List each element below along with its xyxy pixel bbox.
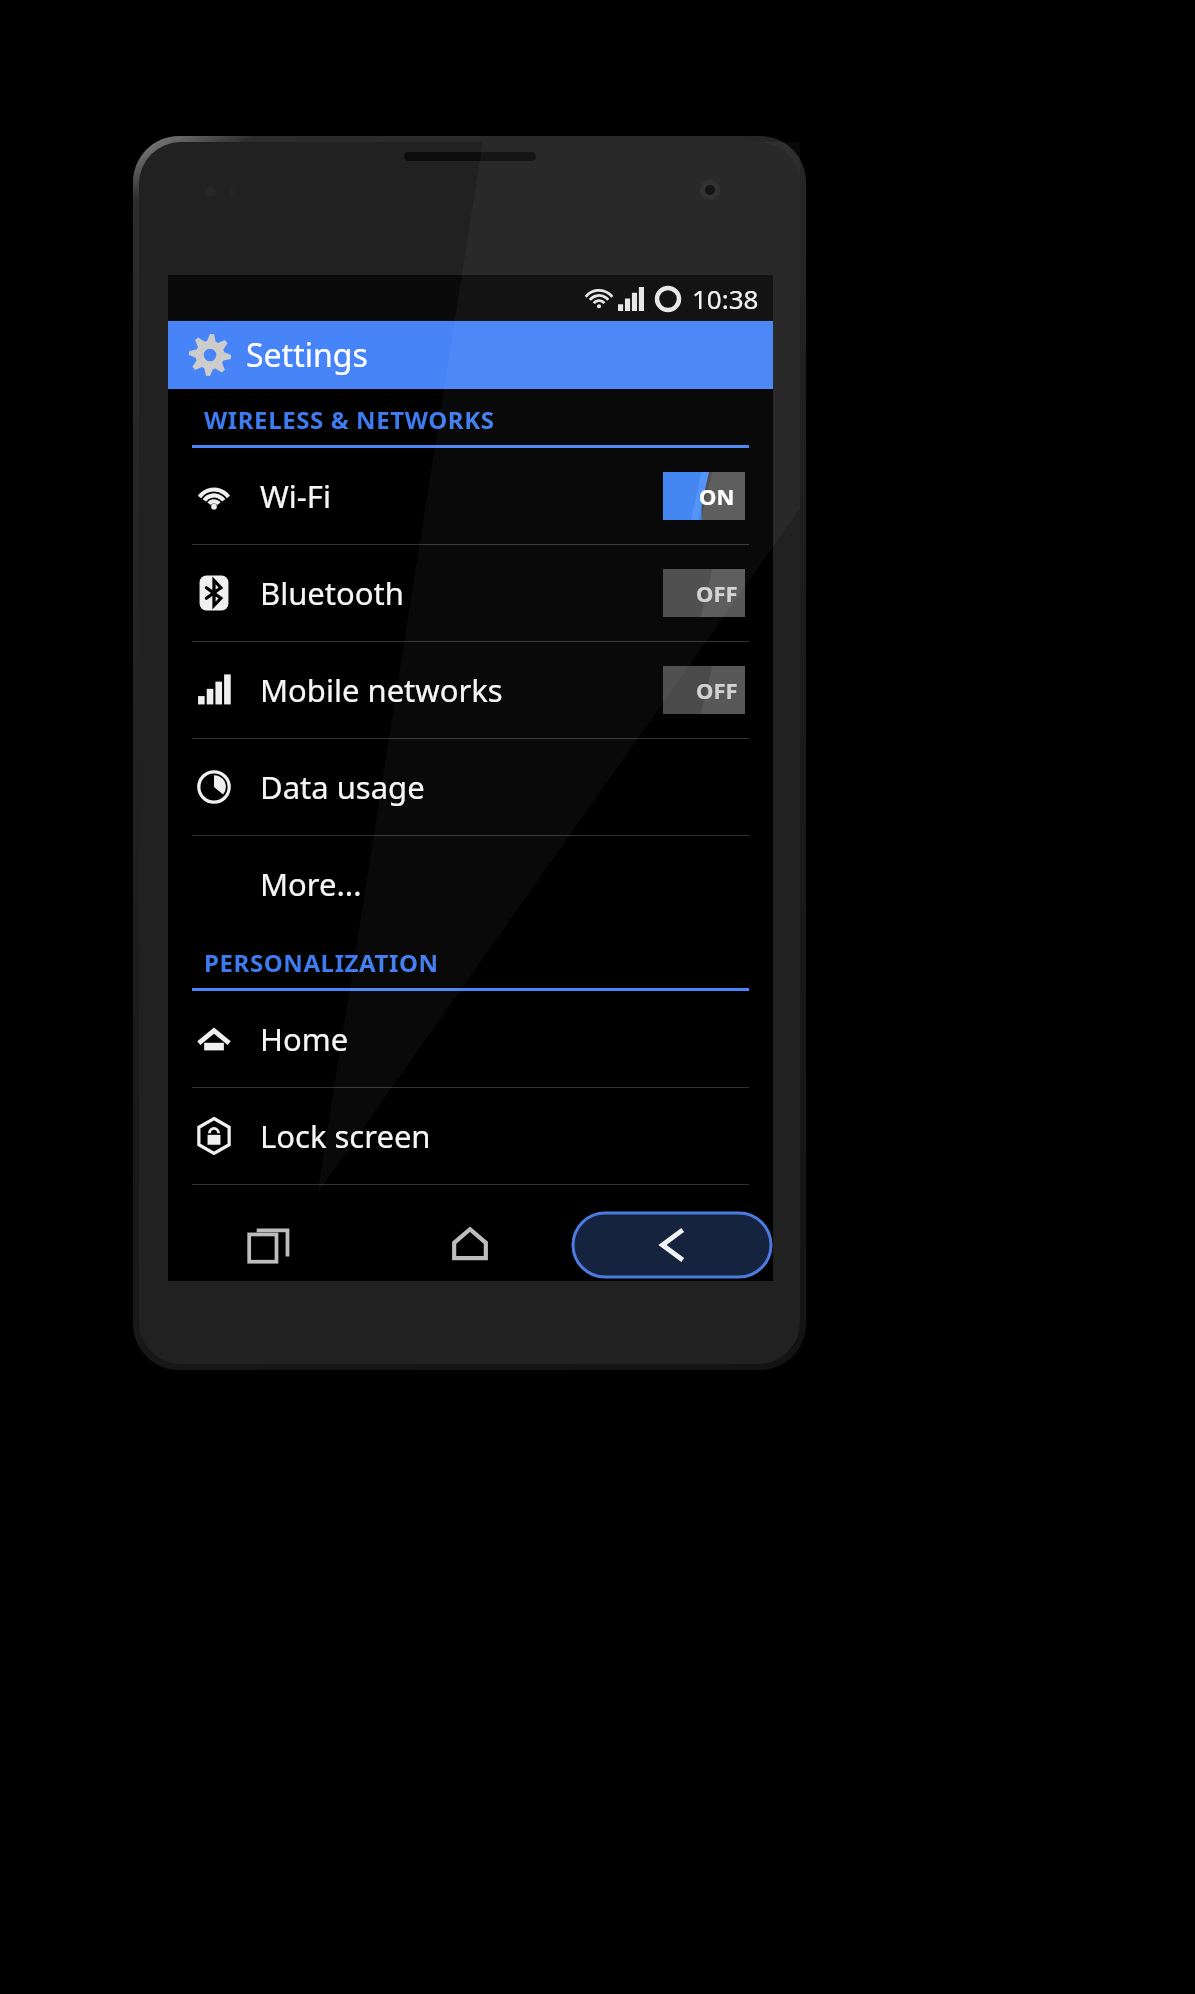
staticText: More... [260, 863, 362, 905]
staticText: Wi-Fi [260, 475, 331, 517]
staticText: PERSONALIZATION [204, 946, 439, 979]
button[interactable]: Settings [168, 321, 773, 389]
staticText: Mobile networks [260, 669, 503, 711]
button[interactable]: Themes [168, 1185, 773, 1281]
staticText: Settings [246, 333, 368, 377]
button[interactable]: Off [663, 569, 745, 617]
button[interactable]: On [663, 472, 745, 520]
button[interactable]: Off [663, 666, 745, 714]
button[interactable]: Home [369, 1209, 571, 1281]
button[interactable]: Lock screen [168, 1088, 773, 1184]
staticText: Bluetooth [260, 572, 404, 614]
staticText: ON [699, 481, 735, 511]
button[interactable]: Back [571, 1209, 773, 1281]
staticText: Data usage [260, 766, 425, 808]
staticText: WIRELESS & NETWORKS [204, 403, 495, 436]
staticText: 10:38 [692, 281, 759, 316]
staticText: Lock screen [260, 1115, 431, 1157]
button[interactable]: Data usage [168, 739, 773, 835]
button[interactable]: More... [168, 836, 773, 932]
button[interactable]: Bluetooth [168, 545, 773, 641]
button[interactable]: Mobile networks [168, 642, 773, 738]
staticText: Home [260, 1018, 349, 1060]
staticText: OFF [696, 578, 738, 608]
button[interactable]: Home [168, 991, 773, 1087]
staticText: Themes [260, 1212, 376, 1254]
staticText: OFF [696, 675, 738, 705]
button[interactable]: Recent apps [168, 1209, 369, 1281]
button[interactable]: Wi-Fi [168, 448, 773, 544]
